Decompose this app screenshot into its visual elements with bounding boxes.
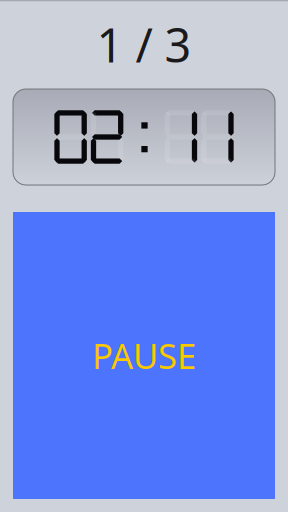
staticText: 1 / 3 [96, 13, 191, 75]
staticText: PAUSE [92, 332, 196, 378]
button[interactable]: PAUSE [13, 212, 275, 499]
